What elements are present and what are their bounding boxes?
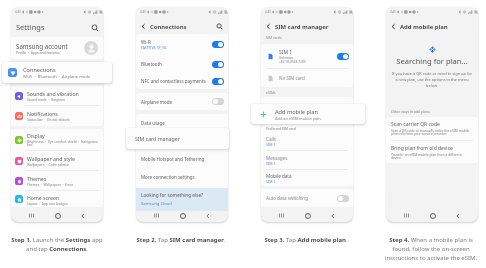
staticText: Auto data switching — [266, 195, 337, 201]
staticText: Other ways to add plans — [391, 109, 430, 114]
button[interactable]: Scan carrier QR code — [391, 121, 473, 136]
staticText: Themes — [27, 175, 47, 182]
staticText: SIM card manager — [275, 23, 329, 31]
button[interactable]: Calls — [266, 132, 348, 150]
button[interactable]: Display — [15, 129, 99, 150]
button[interactable]: Back — [202, 210, 213, 221]
staticText: Add mobile plan — [400, 23, 448, 31]
button[interactable]: Back — [264, 22, 273, 31]
staticText: Looking for something else? — [141, 192, 204, 198]
button[interactable]: Messages — [266, 151, 348, 169]
staticText: Sound mode · Ringtone — [27, 97, 66, 101]
staticText: 4:43 — [390, 10, 396, 14]
button[interactable]: Mobile Hotspot and Tethering — [141, 150, 223, 168]
staticText: Bring plan from old device — [391, 145, 453, 152]
button[interactable]: Toggle — [212, 78, 224, 85]
button[interactable]: Back — [77, 210, 88, 221]
staticText: Home screen — [27, 194, 60, 201]
button[interactable]: Back — [327, 210, 338, 221]
button[interactable]: Add mobile plan — [251, 104, 365, 124]
staticText: SIM 1 — [266, 179, 276, 184]
staticText: Settings — [16, 22, 45, 32]
button[interactable]: More connection settings — [141, 168, 223, 186]
button[interactable]: Toggle — [212, 98, 224, 105]
button[interactable]: Recents — [151, 210, 162, 221]
staticText: SIM cards — [266, 35, 282, 40]
staticText: More connection settings — [141, 174, 195, 180]
staticText: Data usage — [141, 120, 165, 126]
button[interactable]: Back — [139, 22, 148, 31]
staticText: Wallpaper and style — [27, 155, 75, 162]
staticText: Sounds and vibration — [27, 90, 79, 97]
staticText: Mobile data — [266, 173, 292, 179]
button[interactable]: Home — [427, 210, 438, 221]
button[interactable]: Home — [177, 210, 188, 221]
staticText: Step 4. When a mobile plan is found, fol… — [380, 236, 482, 261]
button[interactable]: Wallpaper and style — [15, 151, 99, 170]
button[interactable]: Recents — [276, 210, 287, 221]
button[interactable]: Home screen — [15, 191, 99, 207]
staticText: No SIM card — [279, 75, 305, 81]
staticText: Calls — [266, 136, 277, 142]
button[interactable]: Home — [302, 210, 313, 221]
staticText: Preferred SIM card — [266, 126, 296, 131]
button[interactable]: Samsung account — [11, 37, 103, 59]
staticText: Scan a QR code or manually enter the eSI… — [391, 128, 473, 136]
staticText: Unknown — [279, 56, 294, 60]
staticText: Connections — [23, 66, 56, 74]
button[interactable]: Recents — [401, 210, 412, 221]
staticText: Transfer an eSIM mobile plan from a diff… — [391, 152, 473, 159]
button[interactable]: Looking for something else? — [136, 188, 228, 211]
button[interactable]: Bring plan from old device — [391, 145, 473, 159]
staticText: Profile · Apps and features — [16, 50, 60, 55]
staticText: SIM 1 — [279, 49, 293, 56]
staticText: eSIMs — [266, 90, 276, 95]
button[interactable]: Home — [52, 210, 63, 221]
staticText: Add mobile plan — [275, 108, 318, 116]
button[interactable]: Recents — [26, 210, 37, 221]
button[interactable]: Wi-Fi — [141, 34, 224, 55]
staticText: Notifications — [27, 110, 58, 117]
staticText: Wi-Fi · Bluetooth · Airplane mode — [23, 74, 91, 80]
button[interactable]: Themes — [15, 171, 99, 190]
staticText: Samsung account — [16, 42, 68, 50]
staticText: Themes · Wallpapers · Icons — [27, 182, 74, 186]
button[interactable]: Data usage — [141, 114, 223, 132]
button[interactable]: Back — [452, 210, 463, 221]
staticText: If you have a QR code or need to sign up… — [391, 71, 473, 88]
staticText: +82 10-2628-7289 — [279, 60, 306, 64]
staticText: SIM 1 — [266, 161, 276, 166]
button[interactable]: Bluetooth — [141, 55, 224, 73]
button[interactable]: Notifications — [15, 106, 99, 125]
staticText: Mobile Hotspot and Tethering — [141, 156, 205, 162]
button[interactable]: Search — [90, 23, 99, 32]
button[interactable]: Connections — [2, 62, 112, 83]
staticText: Layout · App icon badges — [27, 201, 68, 205]
button[interactable]: Toggle — [337, 195, 349, 202]
button[interactable]: No SIM card — [266, 69, 349, 87]
button[interactable]: Mobile data — [266, 170, 348, 186]
button[interactable]: Back — [389, 22, 398, 31]
staticText: Display — [27, 132, 45, 139]
staticText: Searching for plan... — [386, 56, 478, 66]
button[interactable]: NFC and contactless payments — [141, 73, 224, 89]
button[interactable]: Sounds and vibration — [15, 86, 99, 105]
staticText: Status bar · Do not disturb — [27, 117, 70, 121]
staticText: Step 3. Tap Add mobile plan. — [255, 236, 357, 244]
button[interactable]: Toggle — [212, 61, 224, 68]
staticText: Airplane mode — [141, 99, 173, 105]
staticText: Step 1. Launch the Settings app and tap … — [6, 236, 108, 252]
staticText: Samsung Cloud — [141, 201, 172, 207]
button[interactable]: SIM 1 — [266, 44, 349, 68]
staticText: 4:43 — [15, 10, 21, 14]
staticText: Brightness · Eye comfort shield · Naviga… — [27, 139, 99, 147]
staticText: FASTFIVE_5F_5G — [141, 45, 167, 50]
button[interactable]: SIM card manager — [126, 128, 229, 149]
staticText: Connections — [150, 23, 187, 31]
button[interactable]: Toggle — [212, 41, 224, 48]
button[interactable]: Search — [215, 22, 224, 31]
button[interactable]: Auto data switching — [266, 189, 349, 207]
button[interactable]: Airplane mode — [141, 93, 224, 110]
staticText: SIM card manager — [135, 135, 180, 142]
button[interactable]: Toggle — [337, 53, 349, 60]
